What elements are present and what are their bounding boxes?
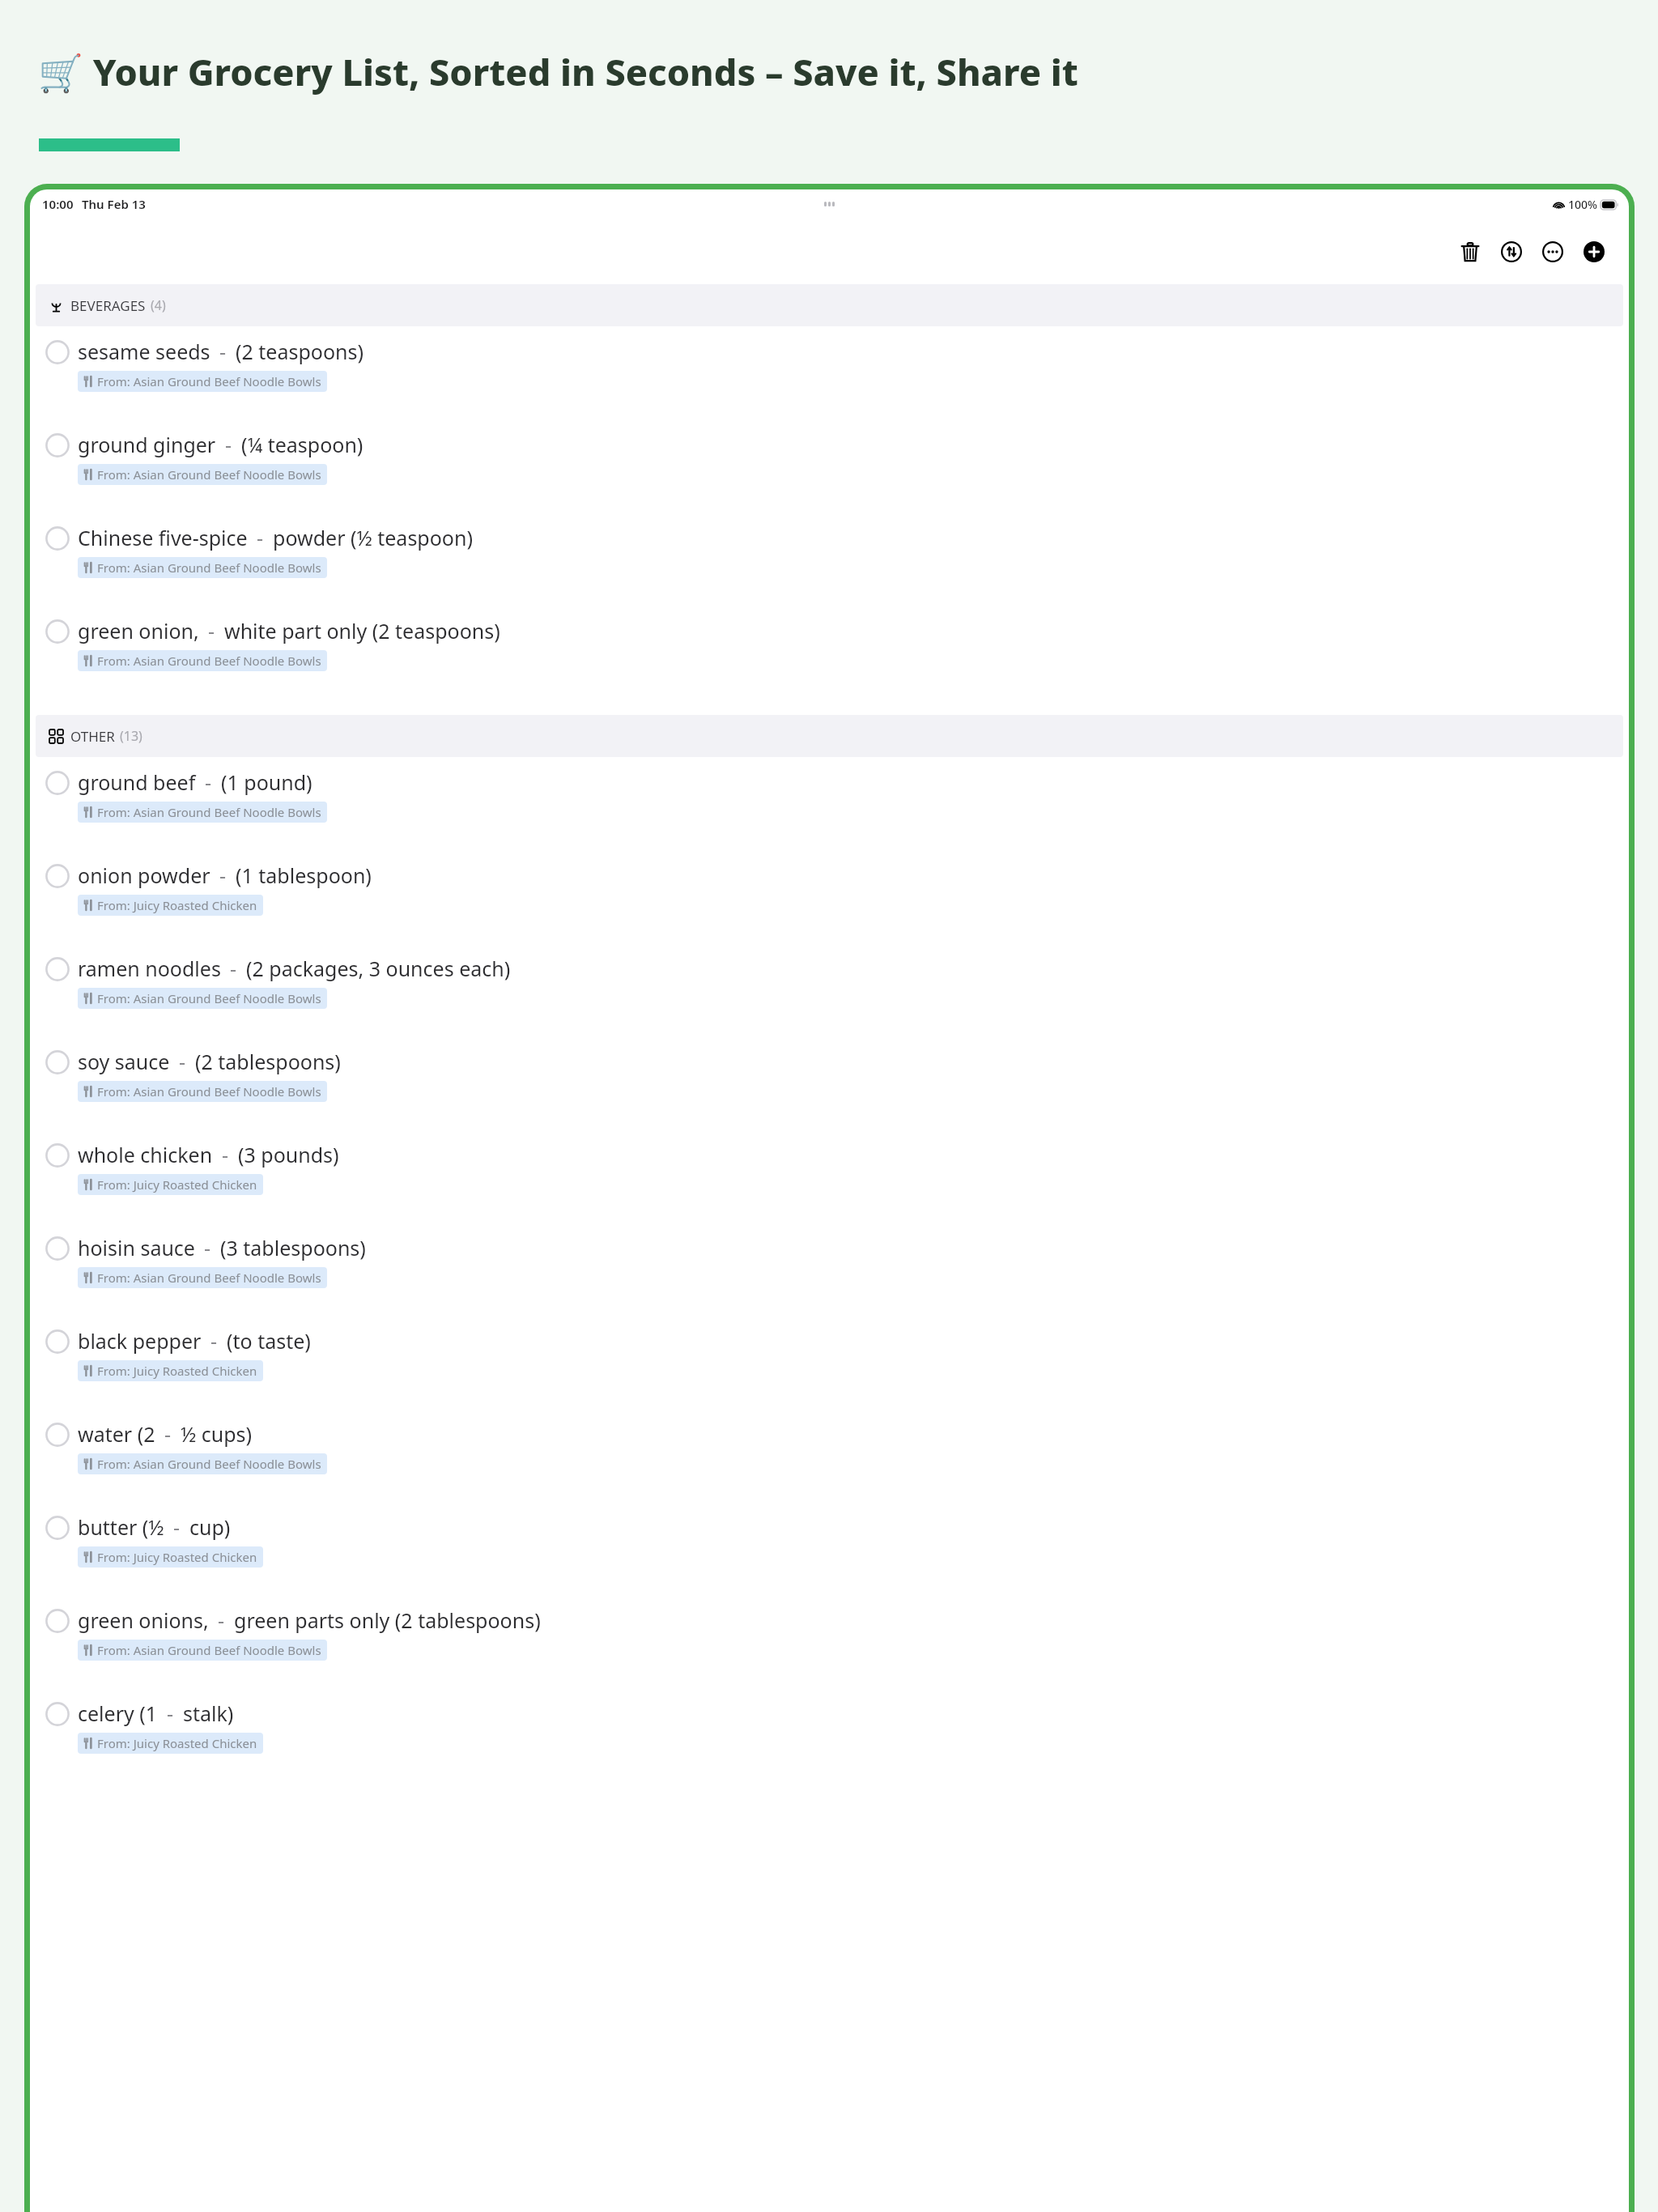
staticText: From: Juicy Roasted Chicken	[97, 1176, 257, 1193]
staticText: -	[257, 524, 264, 551]
staticText: From: Asian Ground Beef Noodle Bowls	[97, 653, 321, 669]
staticText: hoisin sauce	[78, 1234, 195, 1261]
staticText: -	[167, 1699, 174, 1727]
staticText: 100%	[1568, 197, 1597, 212]
staticText: Thu Feb 13	[82, 196, 146, 212]
button[interactable]: BEVERAGES	[36, 284, 1623, 326]
staticText: (2 packages, 3 ounces each)	[246, 955, 511, 982]
staticText: From: Asian Ground Beef Noodle Bowls	[97, 990, 321, 1006]
button[interactable]: ground beef	[36, 757, 1623, 850]
button[interactable]: whole chicken	[36, 1129, 1623, 1223]
staticText: cup)	[189, 1513, 231, 1541]
button[interactable]: Sort	[1496, 236, 1527, 267]
staticText: green parts only (2 tablespoons)	[234, 1606, 541, 1634]
staticText: -	[173, 1513, 181, 1541]
staticText: water (2	[78, 1420, 155, 1448]
staticText: black pepper	[78, 1327, 202, 1355]
staticText: From: Asian Ground Beef Noodle Bowls	[97, 804, 321, 820]
staticText: From: Juicy Roasted Chicken	[97, 1363, 257, 1379]
staticText: BEVERAGES	[70, 296, 146, 315]
staticText: -	[218, 1606, 225, 1634]
staticText: (3 pounds)	[238, 1141, 339, 1168]
staticText: -	[222, 1141, 229, 1168]
staticText: -	[225, 431, 232, 458]
button[interactable]: Delete	[1455, 236, 1486, 267]
staticText: -	[219, 338, 227, 365]
staticText: (to taste)	[227, 1327, 311, 1355]
button[interactable]: butter (½	[36, 1502, 1623, 1595]
button[interactable]: black pepper	[36, 1316, 1623, 1409]
staticText: -	[208, 617, 215, 644]
staticText: -	[164, 1420, 172, 1448]
staticText: white part only (2 teaspoons)	[224, 617, 500, 644]
staticText: From: Asian Ground Beef Noodle Bowls	[97, 1456, 321, 1472]
staticText: From: Asian Ground Beef Noodle Bowls	[97, 559, 321, 576]
button[interactable]: celery (1	[36, 1688, 1623, 1781]
staticText: ramen noodles	[78, 955, 221, 982]
staticText: (13)	[120, 727, 142, 745]
button[interactable]: Add item	[1579, 236, 1609, 267]
button[interactable]: onion powder	[36, 850, 1623, 943]
staticText: butter (½	[78, 1513, 164, 1541]
staticText: green onions,	[78, 1606, 209, 1634]
button[interactable]: sesame seeds	[36, 326, 1623, 419]
staticText: (4)	[151, 296, 166, 314]
staticText: OTHER	[70, 727, 115, 746]
staticText: soy sauce	[78, 1048, 170, 1075]
staticText: green onion,	[78, 617, 199, 644]
staticText: From: Asian Ground Beef Noodle Bowls	[97, 466, 321, 483]
staticText: (2 tablespoons)	[195, 1048, 341, 1075]
button[interactable]: ground ginger	[36, 419, 1623, 513]
staticText: From: Juicy Roasted Chicken	[97, 1735, 257, 1751]
button[interactable]: water (2	[36, 1409, 1623, 1502]
staticText: ground ginger	[78, 431, 216, 458]
staticText: From: Juicy Roasted Chicken	[97, 1549, 257, 1565]
staticText: From: Juicy Roasted Chicken	[97, 897, 257, 913]
staticText: ½ cups)	[181, 1420, 253, 1448]
staticText: (1 pound)	[221, 768, 312, 796]
button[interactable]: ramen noodles	[36, 943, 1623, 1036]
staticText: sesame seeds	[78, 338, 210, 365]
staticText: 🛒 Your Grocery List, Sorted in Seconds –…	[38, 47, 1078, 96]
staticText: (2 teaspoons)	[236, 338, 363, 365]
staticText: -	[219, 861, 227, 889]
staticText: -	[230, 955, 237, 982]
staticText: celery (1	[78, 1699, 158, 1727]
staticText: onion powder	[78, 861, 210, 889]
staticText: -	[210, 1327, 218, 1355]
staticText: whole chicken	[78, 1141, 213, 1168]
button[interactable]: Chinese five-spice	[36, 513, 1623, 606]
staticText: -	[204, 1234, 211, 1261]
staticText: -	[205, 768, 212, 796]
staticText: From: Asian Ground Beef Noodle Bowls	[97, 373, 321, 389]
staticText: (3 tablespoons)	[220, 1234, 366, 1261]
staticText: (¼ teaspoon)	[241, 431, 363, 458]
staticText: -	[179, 1048, 186, 1075]
staticText: ground beef	[78, 768, 196, 796]
button[interactable]: OTHER	[36, 715, 1623, 757]
button[interactable]: green onions,	[36, 1595, 1623, 1688]
staticText: From: Asian Ground Beef Noodle Bowls	[97, 1083, 321, 1100]
staticText: (1 tablespoon)	[236, 861, 372, 889]
staticText: From: Asian Ground Beef Noodle Bowls	[97, 1642, 321, 1658]
button[interactable]: hoisin sauce	[36, 1223, 1623, 1316]
staticText: From: Asian Ground Beef Noodle Bowls	[97, 1270, 321, 1286]
button[interactable]: soy sauce	[36, 1036, 1623, 1129]
button[interactable]	[39, 138, 180, 151]
button[interactable]: More options	[1537, 236, 1568, 267]
staticText: stalk)	[183, 1699, 234, 1727]
staticText: 10:00	[42, 196, 74, 212]
staticText: Chinese five-spice	[78, 524, 248, 551]
staticText: powder (½ teaspoon)	[273, 524, 473, 551]
button[interactable]: green onion,	[36, 606, 1623, 699]
